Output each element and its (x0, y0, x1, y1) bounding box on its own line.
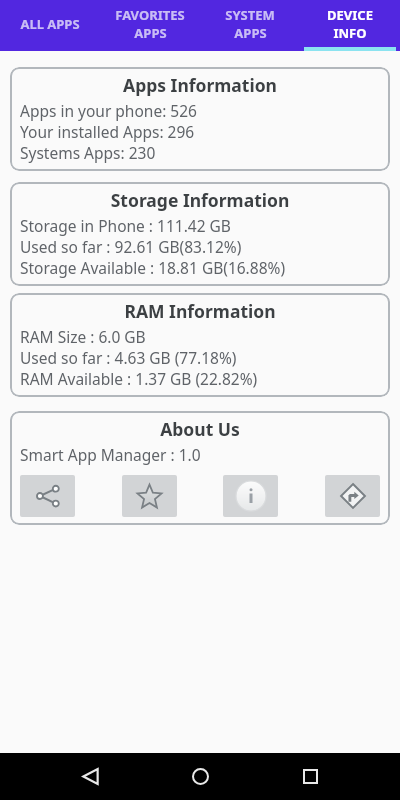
button[interactable]: Rate us (122, 475, 177, 517)
staticText: Storage in Phone : 111.42 GB (20, 215, 231, 236)
staticText: ALL APPS (20, 15, 80, 33)
staticText: RAM Information (20, 299, 380, 323)
staticText: Used so far : 4.63 GB (77.18%) (20, 347, 237, 368)
button[interactable]: Share (20, 475, 75, 517)
staticText: Systems Apps: 230 (20, 142, 156, 163)
button[interactable]: ALL APPS (0, 0, 100, 51)
staticText: INFO (333, 24, 367, 42)
button[interactable]: Storage Information (10, 182, 390, 286)
button[interactable]: Home (164, 753, 236, 800)
button[interactable]: FAVORITES (100, 0, 200, 51)
staticText: DEVICE (327, 6, 373, 24)
staticText: Apps in your phone: 526 (20, 100, 197, 121)
button[interactable]: SYSTEM (200, 0, 300, 51)
button[interactable]: Back (54, 753, 126, 800)
staticText: Your installed Apps: 296 (20, 121, 195, 142)
button[interactable]: Recent apps (274, 753, 346, 800)
staticText: RAM Available : 1.37 GB (22.82%) (20, 368, 258, 389)
staticText: RAM Size : 6.0 GB (20, 326, 146, 347)
button[interactable]: Apps Information (10, 67, 390, 171)
button[interactable]: RAM Information (10, 293, 390, 397)
staticText: APPS (234, 24, 267, 42)
staticText: Smart App Manager : 1.0 (20, 444, 201, 465)
staticText: FAVORITES (115, 6, 185, 24)
staticText: Storage Available : 18.81 GB(16.88%) (20, 257, 286, 278)
staticText: APPS (134, 24, 167, 42)
staticText: Apps Information (20, 73, 380, 97)
button[interactable]: More apps (325, 475, 380, 517)
staticText: About Us (20, 417, 380, 441)
button[interactable]: DEVICE (300, 0, 400, 51)
staticText: SYSTEM (225, 6, 275, 24)
staticText: Storage Information (20, 188, 380, 212)
staticText: Used so far : 92.61 GB(83.12%) (20, 236, 242, 257)
button[interactable]: Information (223, 475, 278, 517)
